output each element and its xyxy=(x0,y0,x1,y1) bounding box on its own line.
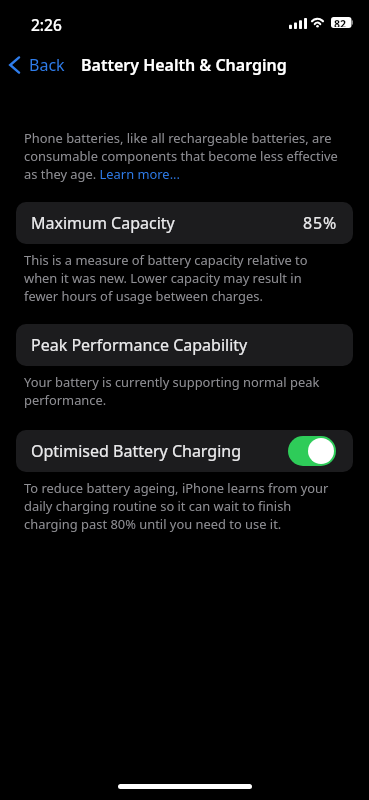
staticText: Optimised Battery Charging xyxy=(31,440,242,462)
staticText: This is a measure of battery capacity re… xyxy=(24,251,339,305)
staticText: Battery Health & Charging xyxy=(81,54,287,76)
staticText: Your battery is currently supporting nor… xyxy=(24,373,339,409)
staticText: To reduce battery ageing, iPhone learns … xyxy=(24,479,339,533)
staticText: 85% xyxy=(303,212,338,234)
button[interactable]: Maximum Capacity xyxy=(16,202,353,244)
staticText: 82 xyxy=(334,17,347,27)
staticText: Peak Performance Capability xyxy=(31,334,248,356)
button[interactable]: Back xyxy=(0,50,73,80)
button[interactable]: Optimised Battery Charging xyxy=(16,430,353,472)
button[interactable]: Peak Performance Capability xyxy=(16,324,353,366)
button[interactable]: Optimised Battery Charging toggle xyxy=(288,436,336,466)
staticText: Phone batteries, like all rechargeable b… xyxy=(24,129,339,183)
staticText: Maximum Capacity xyxy=(31,212,175,234)
staticText: Back xyxy=(29,54,65,76)
staticText: 2:26 xyxy=(31,14,62,35)
